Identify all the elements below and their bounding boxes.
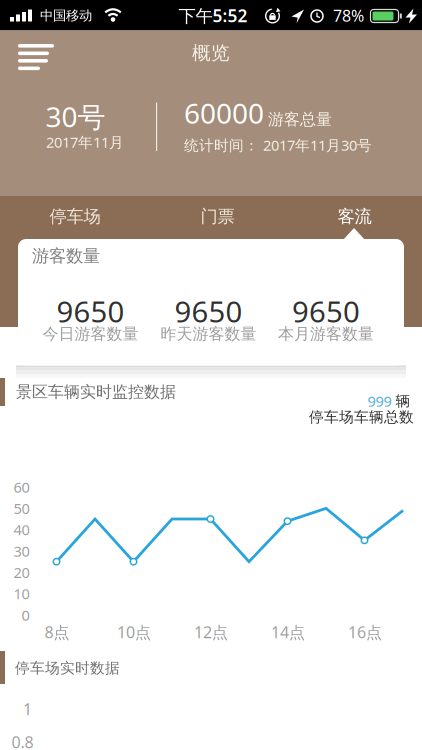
staticText: 10点 [117, 621, 151, 643]
staticText: 14点 [271, 621, 305, 643]
staticText: 0.8 [11, 731, 33, 750]
button[interactable]: 停车场 [5, 195, 145, 237]
staticText: 12点 [194, 621, 228, 643]
staticText: 停车场实时数据 [15, 659, 120, 677]
staticText: 999 [367, 391, 391, 411]
staticText: 9650 [174, 291, 242, 330]
staticText: 统计时间： 2017年11月30号 [184, 135, 372, 155]
button[interactable]: 客流 [284, 195, 422, 237]
button[interactable]: 门票 [147, 195, 287, 237]
staticText: 2017年11月 [46, 132, 124, 152]
staticText: 景区车辆实时监控数据 [16, 382, 176, 402]
staticText: 停车场 [49, 206, 100, 227]
staticText: 60000 [184, 94, 264, 132]
staticText: 昨天游客数量 [160, 324, 256, 344]
staticText: 0 [21, 605, 29, 625]
staticText: 下午5:52 [178, 4, 247, 27]
staticText: 30 [13, 541, 29, 561]
staticText: 概览 [192, 41, 230, 64]
staticText: 20 [13, 563, 29, 582]
staticText: 游客数量 [32, 245, 100, 267]
staticText: 40 [13, 520, 29, 539]
staticText: 16点 [348, 621, 382, 643]
staticText: 30号 [45, 98, 105, 135]
staticText: 10 [13, 584, 29, 603]
staticText: 78% [333, 5, 364, 26]
staticText: 8点 [44, 621, 69, 643]
staticText: 中国移动 [40, 7, 92, 24]
staticText: 客流 [337, 206, 371, 227]
staticText: 9650 [56, 291, 124, 330]
staticText: 停车场车辆总数 [309, 408, 414, 426]
staticText: 门票 [200, 206, 234, 227]
button[interactable]: Menu [0, 30, 62, 76]
staticText: 50 [13, 499, 29, 518]
staticText: 今日游客数量 [42, 324, 138, 344]
staticText: 游客总量 [268, 110, 332, 129]
staticText: 9650 [292, 291, 360, 330]
staticText: 本月游客数量 [278, 324, 374, 344]
staticText: 1 [23, 698, 32, 720]
staticText: 60 [13, 477, 29, 497]
staticText: 辆 [395, 392, 410, 410]
